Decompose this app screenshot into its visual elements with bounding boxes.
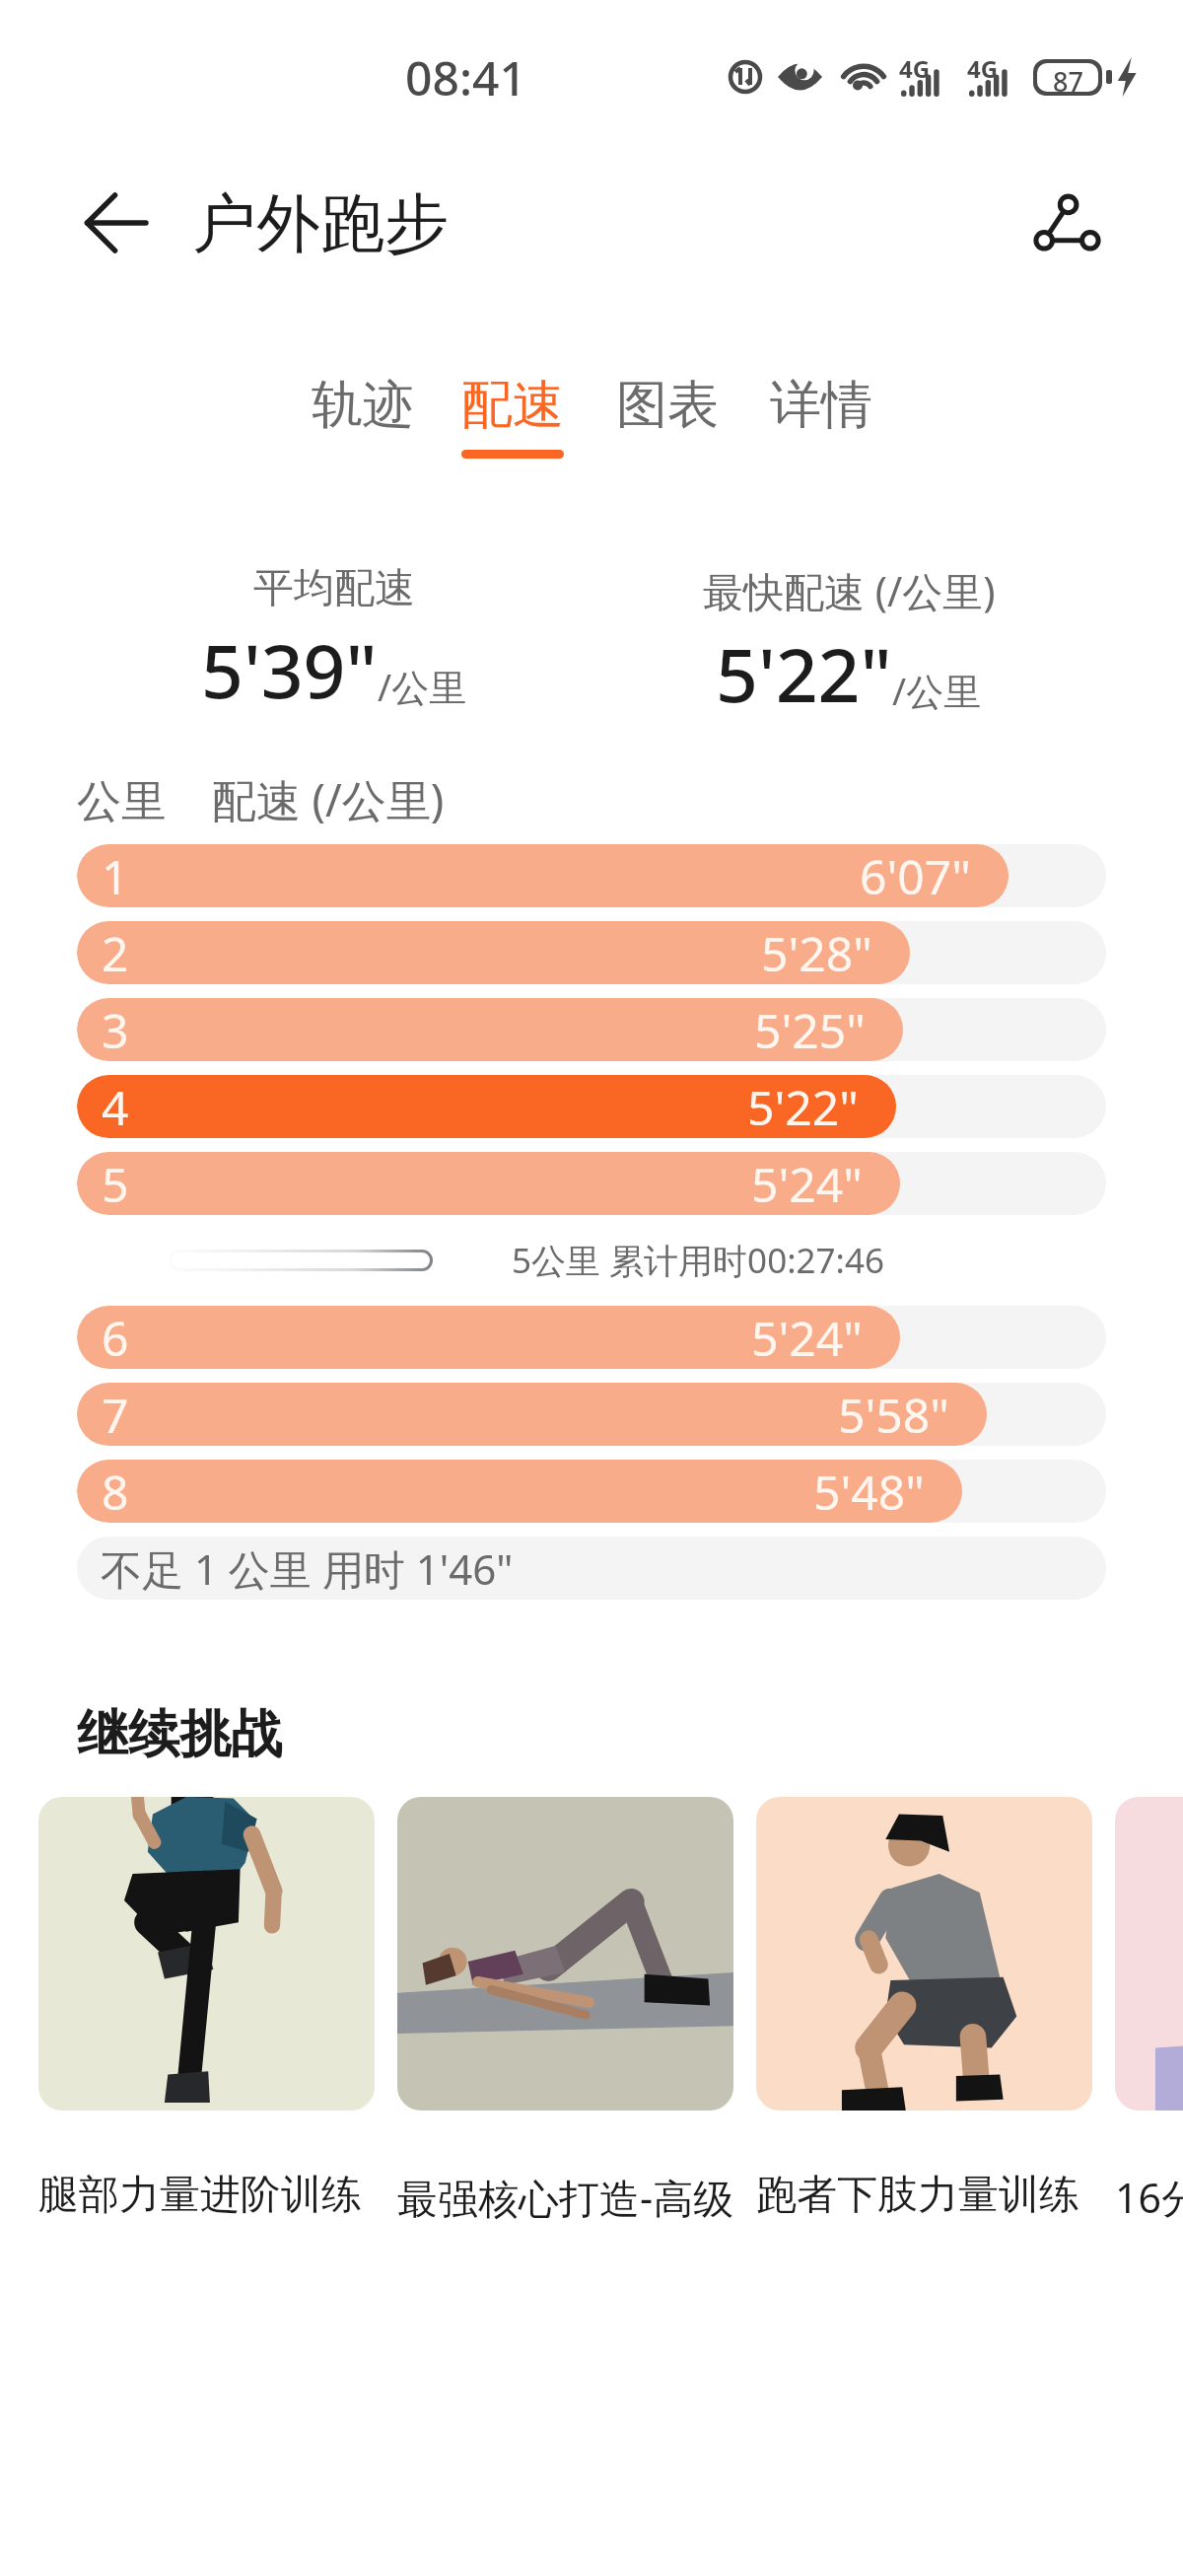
staticText: 2 bbox=[102, 921, 129, 984]
staticText: 最强核心打造-高级 bbox=[397, 2170, 733, 2225]
button[interactable]: 跑者下肢力量训练 bbox=[756, 1797, 1092, 2221]
staticText: 5'22" bbox=[716, 623, 892, 724]
staticText: 5公里 累计用时00:27:46 bbox=[512, 1237, 885, 1284]
staticText: 5'24" bbox=[751, 1306, 863, 1369]
button[interactable]: 配速 bbox=[436, 373, 590, 483]
staticText: 3 bbox=[102, 998, 129, 1061]
button[interactable]: 不足 1 公里 用时 1'46" bbox=[77, 1537, 1106, 1600]
staticText: 6'07" bbox=[860, 844, 971, 907]
staticText: 7 bbox=[102, 1383, 129, 1446]
button[interactable]: 1 bbox=[77, 844, 1106, 907]
button[interactable]: 7 bbox=[77, 1383, 1106, 1446]
staticText: 5'39" bbox=[201, 619, 378, 720]
staticText: 不足 1 公里 用时 1'46" bbox=[101, 1540, 514, 1597]
staticText: 5'48" bbox=[813, 1460, 925, 1523]
staticText: 08:41 bbox=[405, 45, 526, 109]
staticText: 4G bbox=[967, 52, 999, 85]
button[interactable]: 16分钟燃脂跑 bbox=[1115, 1797, 1183, 2221]
staticText: 5'58" bbox=[838, 1383, 949, 1446]
staticText: 5'22" bbox=[747, 1075, 859, 1138]
staticText: 8 bbox=[102, 1460, 129, 1523]
staticText: 公里 配速 (/公里) bbox=[77, 769, 445, 829]
staticText: 配速 bbox=[461, 373, 564, 438]
button[interactable]: 腿部力量进阶训练 bbox=[38, 1797, 375, 2221]
staticText: 平均配速 bbox=[253, 563, 415, 614]
staticText: 87 bbox=[1053, 63, 1083, 92]
staticText: 5'24" bbox=[751, 1152, 863, 1215]
staticText: 详情 bbox=[770, 373, 872, 438]
staticText: 4 bbox=[102, 1075, 129, 1138]
button[interactable]: 最强核心打造-高级 bbox=[397, 1797, 733, 2221]
staticText: 继续挑战 bbox=[77, 1702, 282, 1767]
staticText: 5'25" bbox=[754, 998, 866, 1061]
button[interactable]: 8 bbox=[77, 1460, 1106, 1523]
staticText: 16分钟燃脂跑 bbox=[1115, 2170, 1183, 2225]
staticText: 户外跑步 bbox=[192, 183, 449, 264]
button[interactable]: 5 bbox=[77, 1152, 1106, 1215]
staticText: 轨迹 bbox=[312, 373, 414, 438]
staticText: 1 bbox=[102, 844, 129, 907]
staticText: 腿部力量进阶训练 bbox=[38, 2170, 375, 2221]
button[interactable]: 图表 bbox=[591, 373, 744, 483]
button[interactable]: 2 bbox=[77, 921, 1106, 984]
staticText: 6 bbox=[102, 1306, 129, 1369]
button[interactable]: 4 bbox=[77, 1075, 1106, 1138]
staticText: 跑者下肢力量训练 bbox=[756, 2170, 1092, 2221]
button[interactable]: 3 bbox=[77, 998, 1106, 1061]
button[interactable]: 详情 bbox=[744, 373, 898, 483]
staticText: /公里 bbox=[378, 661, 467, 712]
staticText: 5 bbox=[102, 1152, 129, 1215]
staticText: 图表 bbox=[616, 373, 719, 438]
button[interactable]: Share bbox=[1011, 177, 1106, 271]
button[interactable]: 轨迹 bbox=[286, 373, 440, 483]
button[interactable]: 6 bbox=[77, 1306, 1106, 1369]
button[interactable]: Back bbox=[69, 176, 164, 270]
staticText: 最快配速 (/公里) bbox=[703, 563, 996, 618]
staticText: 4G bbox=[899, 52, 931, 85]
staticText: 5'28" bbox=[761, 921, 872, 984]
staticText: /公里 bbox=[892, 665, 982, 716]
